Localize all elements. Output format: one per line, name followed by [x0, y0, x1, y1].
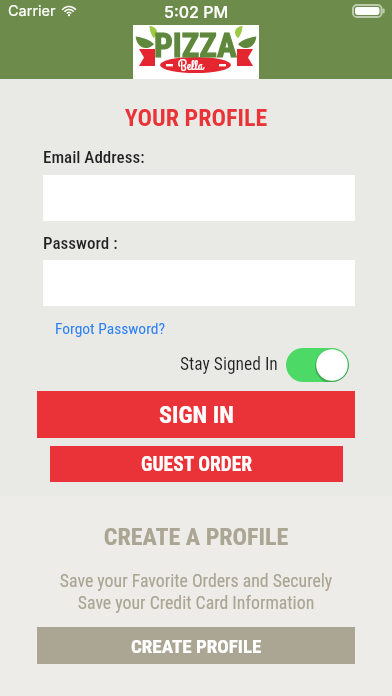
button[interactable]: GUEST ORDER	[50, 446, 343, 482]
staticText: Password :	[43, 233, 118, 253]
button[interactable]: CREATE PROFILE	[37, 627, 355, 664]
button[interactable]: SIGN IN	[37, 391, 355, 438]
staticText: PIZZA	[154, 26, 237, 65]
button[interactable]: Forgot Password?	[55, 320, 165, 338]
staticText: YOUR PROFILE	[0, 104, 392, 132]
button[interactable]: Stay Signed In toggle	[286, 348, 349, 382]
staticText: GUEST ORDER	[141, 453, 253, 476]
staticText: 5:02 PM	[164, 2, 229, 21]
staticText: Stay Signed In	[180, 354, 278, 375]
staticText: SIGN IN	[159, 401, 234, 429]
staticText: CREATE PROFILE	[131, 635, 262, 657]
staticText: Carrier	[8, 2, 56, 20]
staticText: CREATE A PROFILE	[0, 523, 392, 551]
staticText: Email Address:	[43, 147, 145, 167]
staticText: Save your Favorite Orders and Securely S…	[0, 570, 392, 614]
staticText: Bella	[178, 56, 204, 76]
